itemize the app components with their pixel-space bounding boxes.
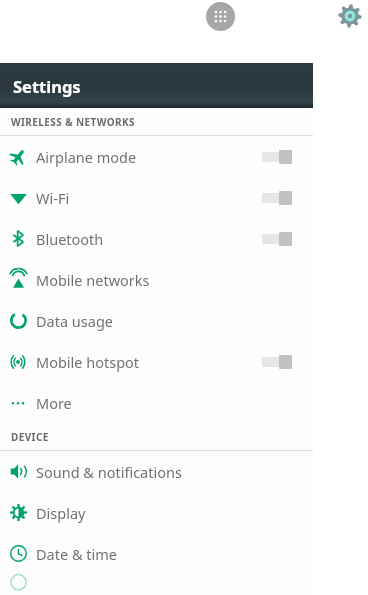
staticText: DEVICE (11, 430, 49, 444)
button[interactable] (0, 574, 313, 595)
button[interactable]: Toggle (259, 186, 295, 210)
button[interactable]: Mobile hotspot (0, 341, 313, 382)
staticText: Settings (13, 75, 81, 97)
button[interactable]: Settings (337, 3, 362, 28)
button[interactable]: Toggle (259, 227, 295, 251)
staticText: Airplane mode (36, 147, 137, 167)
button[interactable]: Date & time (0, 533, 313, 574)
button[interactable]: Wi-Fi (0, 177, 313, 218)
staticText: Wi-Fi (36, 188, 70, 208)
button[interactable]: Display (0, 492, 313, 533)
button[interactable]: Data usage (0, 300, 313, 341)
staticText: Mobile networks (36, 270, 150, 290)
staticText: Date & time (36, 544, 117, 564)
button[interactable]: Bluetooth (0, 218, 313, 259)
button[interactable]: Toggle (259, 145, 295, 169)
button[interactable]: Toggle (259, 350, 295, 374)
staticText: More (36, 393, 72, 413)
staticText: Sound & notifications (36, 462, 182, 482)
button[interactable]: Sound & notifications (0, 451, 313, 492)
button[interactable]: Mobile networks (0, 259, 313, 300)
staticText: Data usage (36, 311, 113, 331)
button[interactable]: Airplane mode (0, 136, 313, 177)
staticText: Display (36, 503, 86, 523)
staticText: WIRELESS & NETWORKS (11, 115, 135, 129)
button[interactable]: Apps (206, 2, 235, 31)
staticText: Mobile hotspot (36, 352, 140, 372)
button[interactable]: More (0, 382, 313, 423)
staticText: Bluetooth (36, 229, 104, 249)
